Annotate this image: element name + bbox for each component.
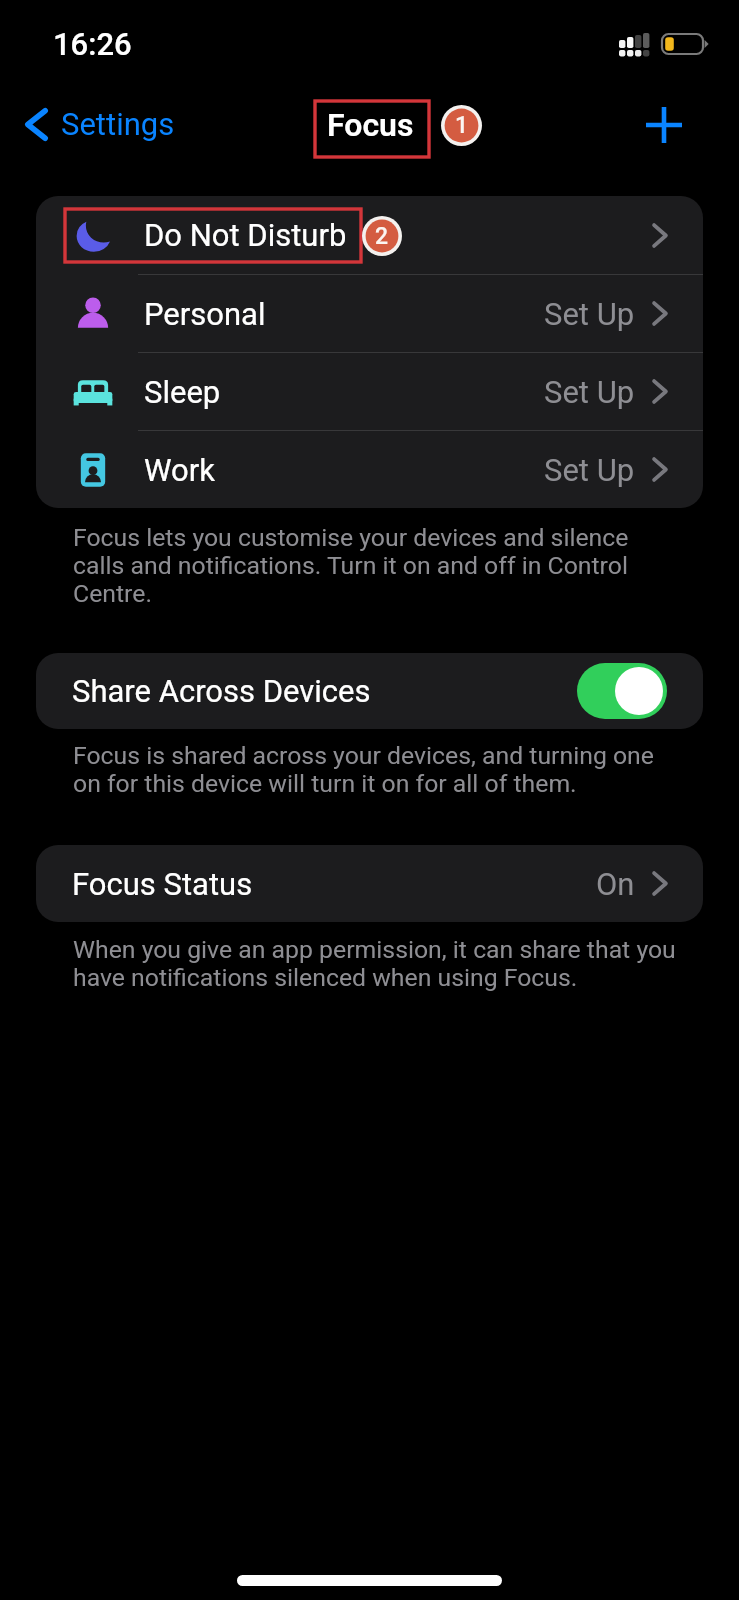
staticText: When you give an app permission, it can …	[73, 935, 685, 993]
staticText: Settings	[61, 106, 175, 142]
button[interactable]: Sleep	[36, 353, 703, 430]
button[interactable]: Focus Status	[36, 845, 703, 922]
button[interactable]: Do Not Disturb	[36, 196, 703, 274]
staticText: Personal	[144, 296, 266, 332]
button[interactable]: Share Across Devices	[36, 653, 703, 729]
staticText: Do Not Disturb	[144, 217, 347, 253]
staticText: Set Up	[544, 452, 635, 488]
staticText: Focus Status	[72, 866, 253, 902]
button[interactable]: Add Focus	[634, 95, 694, 155]
button[interactable]: Share Across Devices toggle	[577, 663, 667, 719]
button[interactable]: Personal	[36, 275, 703, 352]
button[interactable]: Work	[36, 431, 703, 508]
staticText: 1	[455, 112, 469, 139]
staticText: On	[596, 866, 635, 902]
staticText: Focus	[327, 106, 414, 144]
staticText: Set Up	[544, 296, 635, 332]
staticText: Sleep	[144, 374, 221, 410]
staticText: 2	[375, 223, 389, 250]
staticText: Focus is shared across your devices, and…	[73, 741, 685, 799]
staticText: Focus lets you customise your devices an…	[73, 523, 685, 609]
staticText: Work	[144, 452, 215, 488]
staticText: Set Up	[544, 374, 635, 410]
button[interactable]: Settings	[17, 88, 183, 160]
staticText: Share Across Devices	[72, 673, 371, 709]
staticText: 16:26	[53, 26, 132, 62]
